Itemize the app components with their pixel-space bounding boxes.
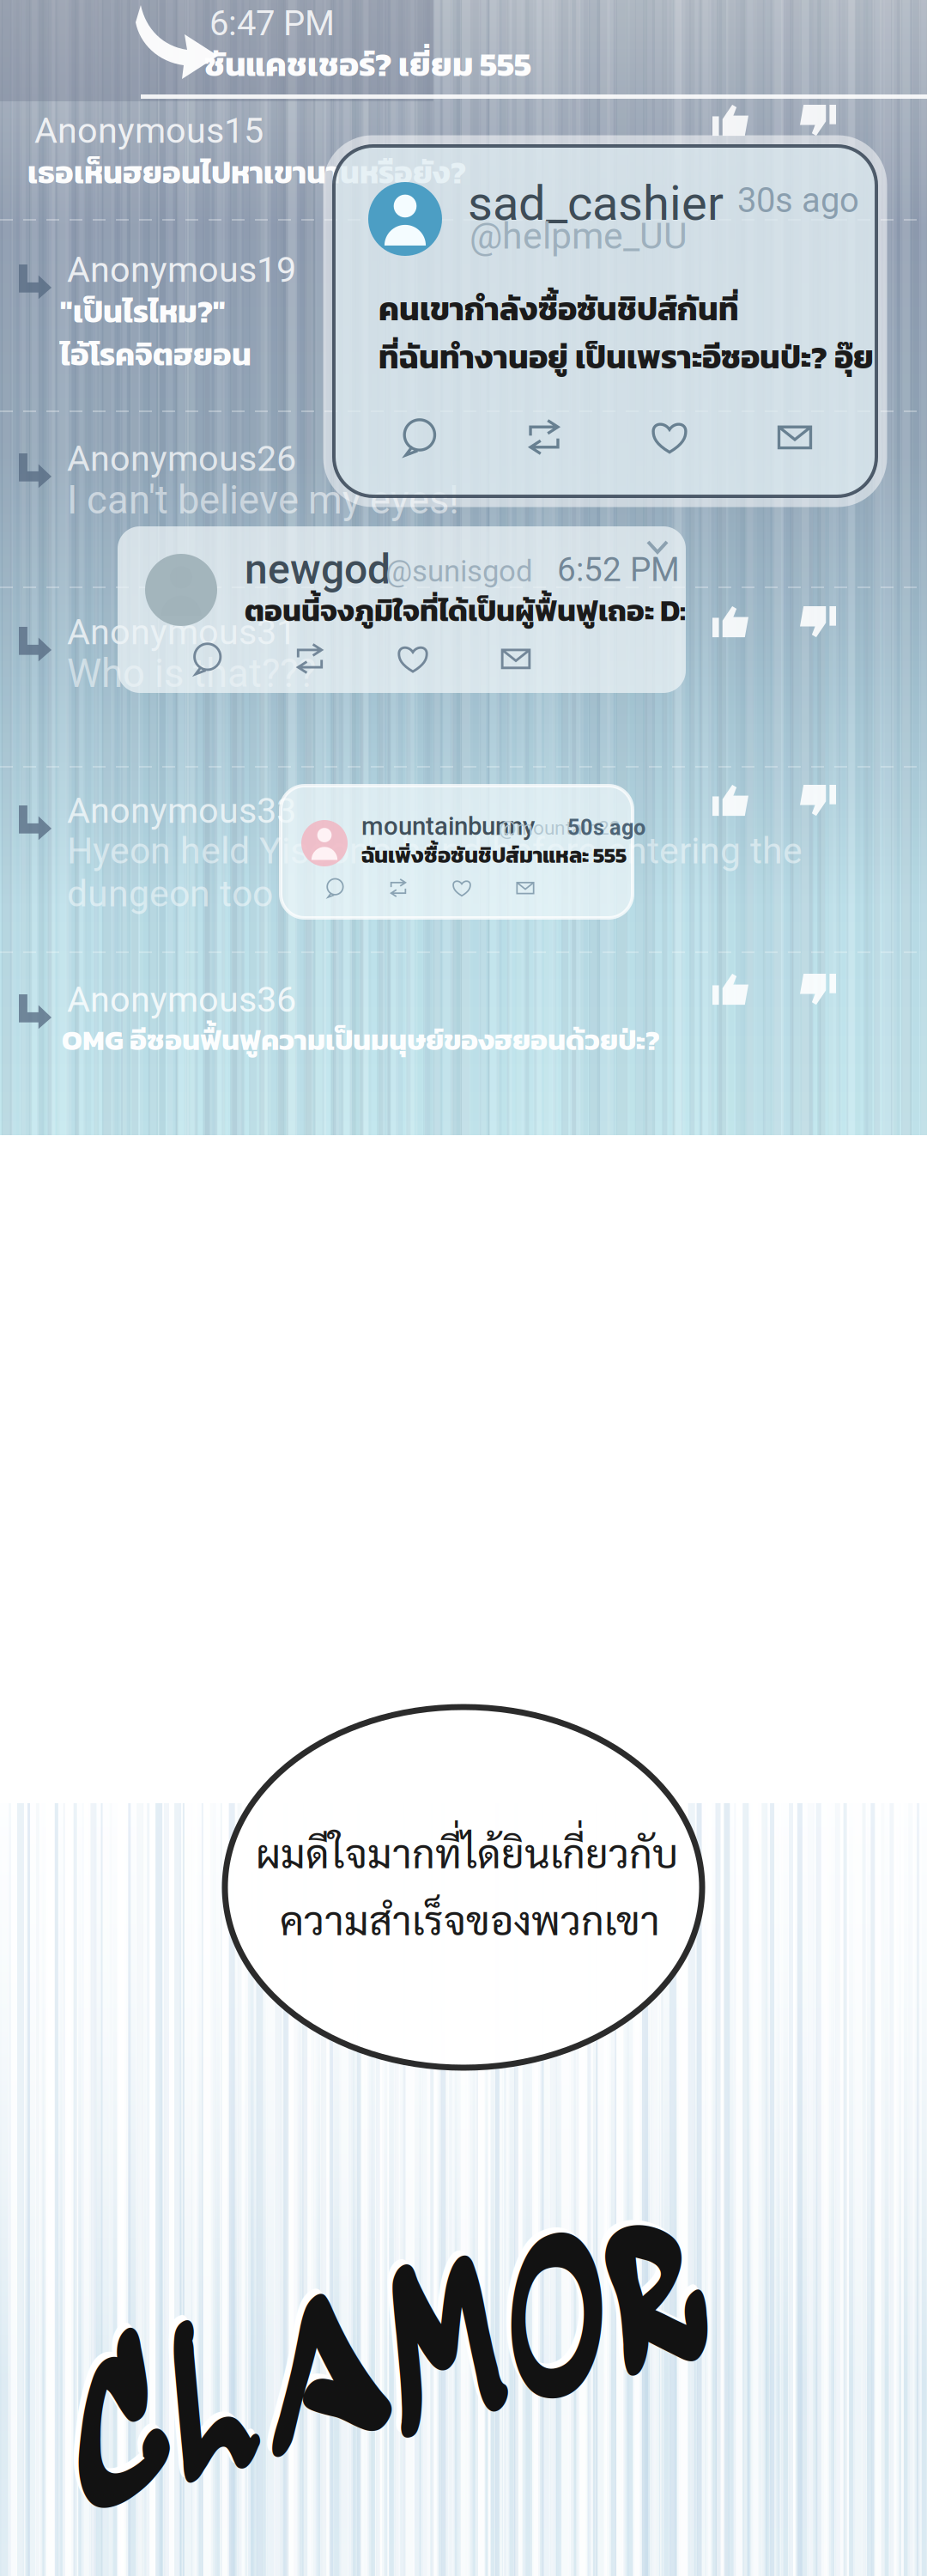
button[interactable]: Anonymous26 bbox=[0, 438, 927, 550]
staticText: @mountain22 bbox=[499, 817, 621, 839]
staticText: I can't believe my eyes! bbox=[67, 477, 459, 523]
button[interactable]: mountainbunny bbox=[281, 786, 633, 918]
staticText: CLAMOR bbox=[58, 2255, 718, 2498]
staticText: ความสำเร็จของพวกเขา bbox=[280, 1893, 660, 1945]
staticText: เธอเห็นฮยอนไปหาเขานานหรือยัง? bbox=[27, 149, 466, 196]
staticText: 6:47 PM bbox=[209, 3, 335, 44]
staticText: sad_cashier bbox=[468, 175, 724, 231]
staticText: ฉันเพิ่งซื้อซันชิปส์มาแหละ 555 bbox=[361, 839, 627, 871]
staticText: CLAMOR bbox=[53, 2250, 712, 2493]
button[interactable]: Anonymous31 bbox=[0, 611, 927, 723]
staticText: 6:52 PM bbox=[557, 550, 680, 589]
button[interactable]: Anonymous19 bbox=[0, 249, 927, 404]
staticText: ไอ้โรคจิตฮยอน bbox=[60, 331, 251, 378]
staticText: ตอนนี้จงภูมิใจที่ได้เป็นผู้ฟื้นฟูเถอะ D: bbox=[245, 588, 686, 633]
staticText: Anonymous19 bbox=[67, 249, 296, 291]
staticText: 30s ago bbox=[737, 180, 859, 221]
staticText: Anonymous15 bbox=[34, 110, 264, 151]
button[interactable]: Anonymous15 bbox=[0, 110, 927, 213]
staticText: ผมดีใจมากที่ได้ยินเกี่ยวกับ bbox=[256, 1826, 678, 1878]
staticText: Hyeon held Yiseon's hand before entering… bbox=[67, 829, 803, 872]
staticText: 50s ago bbox=[567, 815, 645, 840]
staticText: mountainbunny bbox=[361, 811, 535, 841]
staticText: newgod bbox=[245, 545, 391, 594]
staticText: ที่ฉันทำงานอยู่ เป็นเพราะอีซอนป่ะ? อุ๊ย bbox=[379, 333, 874, 381]
staticText: Anonymous33 bbox=[67, 790, 296, 832]
staticText: ซันแคชเชอร์? เยี่ยม 555 bbox=[204, 39, 531, 89]
button[interactable]: newgod bbox=[118, 526, 686, 693]
staticText: Who is that??? bbox=[67, 651, 316, 696]
button[interactable]: Anonymous36 bbox=[0, 979, 927, 1091]
button[interactable]: sad_cashier bbox=[334, 146, 876, 496]
staticText: Anonymous36 bbox=[67, 979, 296, 1020]
staticText: Anonymous31 bbox=[67, 611, 296, 653]
staticText: Anonymous26 bbox=[67, 438, 296, 479]
button[interactable]: Anonymous33 bbox=[0, 790, 927, 945]
staticText: คนเขากำลังซื้อซันชิปส์กันที่ bbox=[379, 285, 739, 333]
staticText: @helpme_UU bbox=[470, 215, 688, 258]
staticText: OMG อีซอนฟื้นฟูความเป็นมนุษย์ของฮยอนด้วย… bbox=[62, 1018, 660, 1061]
staticText: "เป็นไรไหม?" bbox=[60, 289, 226, 335]
staticText: @sunisgod bbox=[385, 554, 533, 589]
staticText: dungeon too bbox=[67, 872, 273, 915]
